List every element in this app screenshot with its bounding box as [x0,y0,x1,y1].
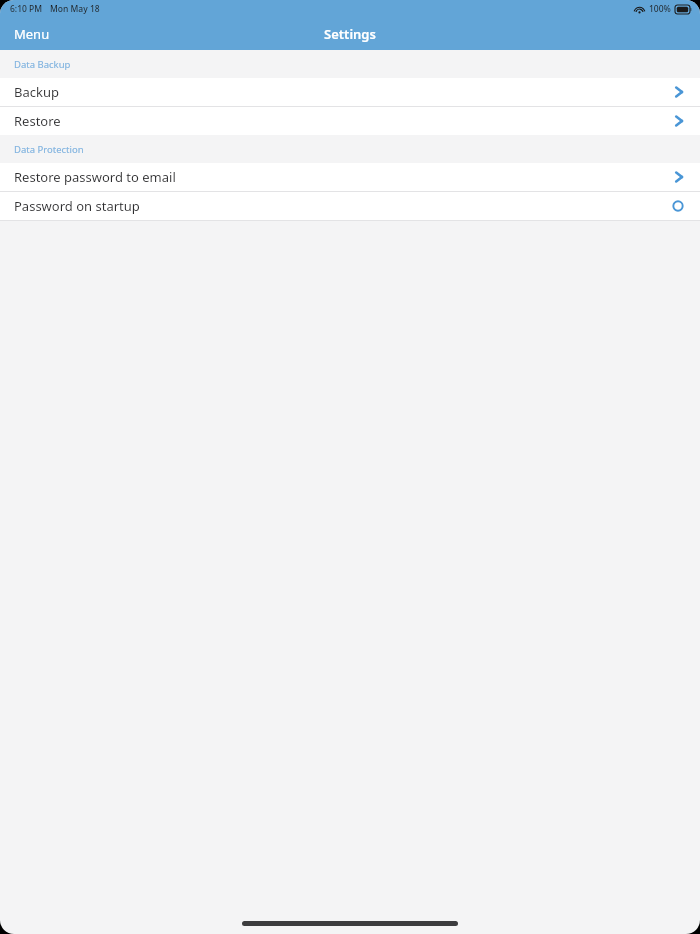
staticText: Settings [324,25,376,43]
staticText: 6:10 PM [10,3,43,15]
staticText: Restore password to email [14,168,176,186]
staticText: Password on startup [14,197,140,215]
staticText: 100% [649,3,671,15]
other: Password on startup toggle [672,200,684,212]
button[interactable]: Menu [0,19,64,49]
staticText: Menu [14,25,50,43]
staticText: Mon May 18 [50,3,100,15]
staticText: Data Backup [14,58,71,71]
staticText: Data Protection [14,143,84,156]
staticText: Backup [14,83,59,101]
button[interactable]: Restore password to email [0,163,700,191]
staticText: Restore [14,112,61,130]
button[interactable]: Restore [0,107,700,135]
other: Open [674,84,684,100]
other: Open [674,169,684,185]
button[interactable]: Password on startup [0,192,700,220]
button[interactable]: Backup [0,78,700,106]
other: Open [674,113,684,129]
